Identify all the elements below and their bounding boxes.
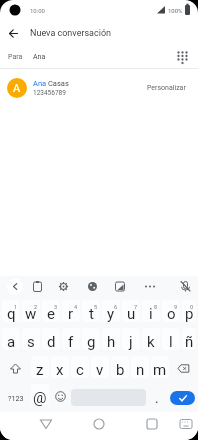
- staticText: Ana Casas: [33, 79, 69, 88]
- button[interactable]: [0, 412, 66, 440]
- button[interactable]: [114, 276, 142, 297]
- staticText: A: [13, 82, 21, 95]
- staticText: 4: [74, 304, 78, 310]
- staticText: d: [47, 333, 56, 351]
- staticText: Personalizar: [147, 84, 186, 92]
- button[interactable]: r: [61, 297, 81, 325]
- staticText: x: [56, 361, 64, 379]
- staticText: e: [47, 305, 55, 323]
- staticText: 5: [94, 304, 98, 310]
- staticText: 8: [154, 304, 158, 310]
- button[interactable]: o: [161, 297, 181, 325]
- staticText: g: [87, 333, 96, 351]
- staticText: w: [25, 305, 37, 323]
- button[interactable]: [167, 381, 197, 409]
- staticText: a: [7, 333, 16, 351]
- staticText: 3: [54, 304, 58, 310]
- staticText: f: [68, 333, 74, 351]
- button[interactable]: k: [141, 325, 161, 353]
- button[interactable]: l: [161, 325, 181, 353]
- staticText: .: [155, 390, 159, 406]
- staticText: @: [33, 389, 47, 407]
- button[interactable]: [29, 276, 58, 297]
- button[interactable]: [142, 276, 170, 297]
- button[interactable]: x: [50, 353, 70, 381]
- button[interactable]: .: [147, 381, 167, 409]
- button[interactable]: v: [90, 353, 110, 381]
- button[interactable]: [50, 381, 70, 409]
- button[interactable]: [170, 353, 197, 381]
- staticText: 10:00: [30, 7, 45, 14]
- staticText: i: [149, 305, 153, 323]
- button[interactable]: Personalizar: [145, 82, 188, 94]
- button[interactable]: g: [81, 325, 101, 353]
- staticText: n: [136, 361, 145, 379]
- staticText: 1: [14, 304, 18, 310]
- button[interactable]: n: [130, 353, 150, 381]
- button[interactable]: b: [110, 353, 130, 381]
- staticText: Nueva conversación: [30, 28, 111, 39]
- staticText: 7: [134, 304, 138, 310]
- button[interactable]: @: [30, 381, 50, 409]
- button[interactable]: ?123: [1, 381, 30, 409]
- staticText: o: [167, 305, 176, 323]
- button[interactable]: [86, 276, 114, 297]
- staticText: 6: [114, 304, 118, 310]
- staticText: ?123: [8, 394, 24, 402]
- button[interactable]: [0, 20, 26, 46]
- staticText: c: [76, 361, 84, 379]
- staticText: l: [169, 333, 173, 351]
- button[interactable]: Para: [0, 46, 198, 68]
- staticText: 123456789: [33, 89, 66, 97]
- staticText: j: [129, 333, 133, 351]
- staticText: z: [36, 361, 44, 379]
- staticText: 0: [190, 304, 194, 310]
- button[interactable]: A: [0, 69, 198, 106]
- staticText: y: [107, 305, 115, 323]
- staticText: b: [116, 361, 125, 379]
- button[interactable]: [70, 381, 147, 409]
- staticText: Ana: [33, 53, 46, 61]
- button[interactable]: z: [30, 353, 50, 381]
- button[interactable]: [66, 412, 132, 440]
- staticText: k: [147, 333, 155, 351]
- staticText: t: [89, 305, 94, 323]
- button[interactable]: ñ: [181, 325, 197, 353]
- button[interactable]: w: [21, 297, 41, 325]
- staticText: Para: [8, 53, 23, 61]
- button[interactable]: [0, 276, 29, 297]
- staticText: ñ: [185, 333, 194, 351]
- button[interactable]: m: [150, 353, 170, 381]
- staticText: p: [185, 305, 194, 323]
- button[interactable]: q: [1, 297, 21, 325]
- staticText: m: [153, 361, 167, 379]
- button[interactable]: s: [21, 325, 41, 353]
- button[interactable]: [58, 276, 86, 297]
- staticText: 2: [34, 304, 38, 310]
- staticText: v: [96, 361, 104, 379]
- button[interactable]: [132, 412, 198, 440]
- button[interactable]: f: [61, 325, 81, 353]
- staticText: s: [27, 333, 35, 351]
- button[interactable]: [1, 353, 30, 381]
- button[interactable]: e: [41, 297, 61, 325]
- staticText: 9: [174, 304, 178, 310]
- button[interactable]: i: [141, 297, 161, 325]
- button[interactable]: p: [181, 297, 197, 325]
- staticText: r: [68, 305, 74, 323]
- button[interactable]: h: [101, 325, 121, 353]
- button[interactable]: j: [121, 325, 141, 353]
- button[interactable]: [170, 276, 198, 297]
- staticText: h: [107, 333, 116, 351]
- button[interactable]: d: [41, 325, 61, 353]
- staticText: u: [127, 305, 136, 323]
- staticText: q: [7, 305, 16, 323]
- button[interactable]: y: [101, 297, 121, 325]
- button[interactable]: t: [81, 297, 101, 325]
- button[interactable]: u: [121, 297, 141, 325]
- staticText: 100%: [168, 7, 183, 14]
- button[interactable]: a: [1, 325, 21, 353]
- button[interactable]: c: [70, 353, 90, 381]
